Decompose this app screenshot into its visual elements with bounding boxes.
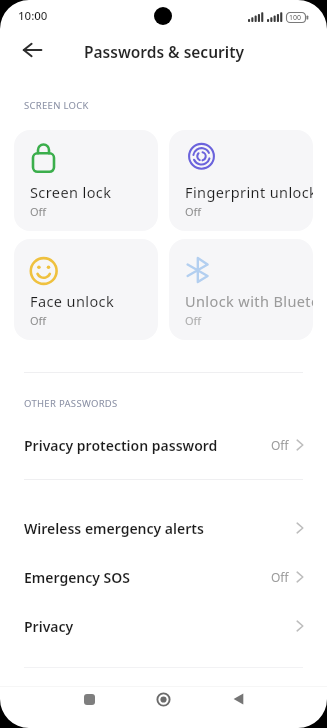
button[interactable]: Unlock with Bluetooth	[169, 239, 313, 340]
staticText: Off	[30, 204, 47, 219]
staticText: Off	[30, 313, 47, 328]
button[interactable]: Face unlock	[14, 239, 158, 340]
button[interactable]: Wireless emergency alerts	[0, 504, 327, 552]
button[interactable]	[227, 688, 249, 710]
staticText: 10:00	[18, 8, 48, 24]
staticText: OTHER PASSWORDS	[24, 397, 118, 410]
button[interactable]: Screen lock	[14, 130, 158, 231]
staticText: Fingerprint unlock	[185, 182, 313, 202]
button[interactable]	[152, 688, 174, 710]
staticText: Face unlock	[30, 291, 115, 311]
button[interactable]	[78, 688, 100, 710]
staticText: Privacy protection password	[24, 436, 218, 455]
staticText: Off	[271, 569, 289, 585]
staticText: Unlock with Bluetooth	[185, 291, 313, 311]
staticText: Screen lock	[30, 182, 112, 202]
staticText: Off	[271, 437, 289, 453]
staticText: Off	[185, 204, 202, 219]
staticText: 100	[289, 13, 302, 23]
button[interactable]	[23, 43, 42, 57]
button[interactable]: Privacy	[0, 602, 327, 650]
staticText: Emergency SOS	[24, 568, 131, 587]
button[interactable]: Fingerprint unlock	[169, 130, 313, 231]
staticText: Off	[185, 313, 202, 328]
button[interactable]: Privacy protection password	[0, 421, 327, 469]
staticText: Wireless emergency alerts	[24, 519, 204, 538]
staticText: Passwords & security	[84, 41, 244, 62]
button[interactable]: Emergency SOS	[0, 553, 327, 601]
staticText: SCREEN LOCK	[24, 99, 89, 112]
staticText: Privacy	[24, 617, 74, 636]
